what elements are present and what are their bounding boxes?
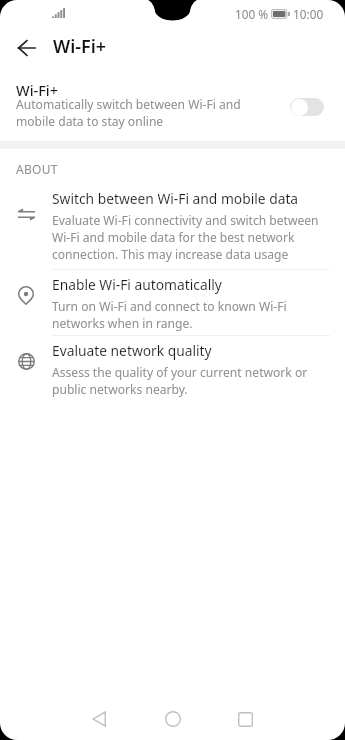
staticText: Evaluate Wi-Fi connectivity and switch b… (52, 212, 332, 263)
staticText: 100 % (235, 6, 269, 22)
button[interactable]: Back (76, 698, 122, 740)
button[interactable]: Recent apps (222, 698, 268, 740)
button[interactable]: Wi-Fi+ (0, 72, 345, 132)
button[interactable]: Back (6, 26, 46, 66)
staticText: Wi-Fi+ (16, 80, 59, 100)
staticText: Assess the quality of your current netwo… (52, 364, 332, 398)
button[interactable]: Switch between Wi-Fi and mobile data (0, 189, 345, 272)
button[interactable]: Enable Wi-Fi automatically (0, 275, 345, 338)
staticText: Turn on Wi-Fi and connect to known Wi-Fi… (52, 298, 332, 332)
button[interactable]: Wi-Fi+ switch (290, 98, 324, 116)
button[interactable]: Home (150, 698, 196, 740)
staticText: 10:00 (293, 6, 324, 22)
staticText: Switch between Wi-Fi and mobile data (52, 189, 299, 208)
staticText: Evaluate network quality (52, 341, 212, 360)
staticText: Automatically switch between Wi-Fi and m… (16, 96, 256, 130)
button[interactable]: Evaluate network quality (0, 341, 345, 404)
staticText: Wi-Fi+ (53, 34, 107, 59)
staticText: Enable Wi-Fi automatically (52, 275, 222, 294)
staticText: ABOUT (16, 161, 58, 177)
